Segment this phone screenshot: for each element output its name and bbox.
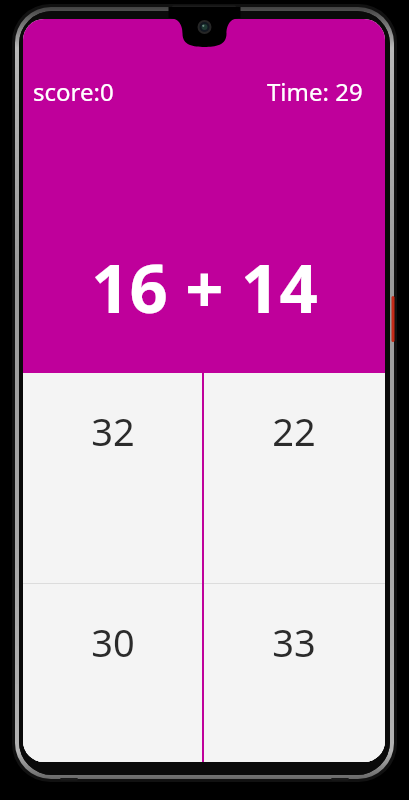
button[interactable]: 30 <box>23 584 202 762</box>
staticText: 30 <box>91 616 135 668</box>
staticText: Time: 29 <box>267 75 363 108</box>
button[interactable]: 22 <box>202 373 385 583</box>
button[interactable]: 33 <box>202 584 385 762</box>
staticText: 22 <box>272 405 316 457</box>
staticText: 33 <box>272 616 316 668</box>
staticText: score:0 <box>33 75 114 108</box>
button[interactable]: 32 <box>23 373 202 583</box>
staticText: 16 + 14 <box>91 241 318 332</box>
staticText: 32 <box>91 405 135 457</box>
